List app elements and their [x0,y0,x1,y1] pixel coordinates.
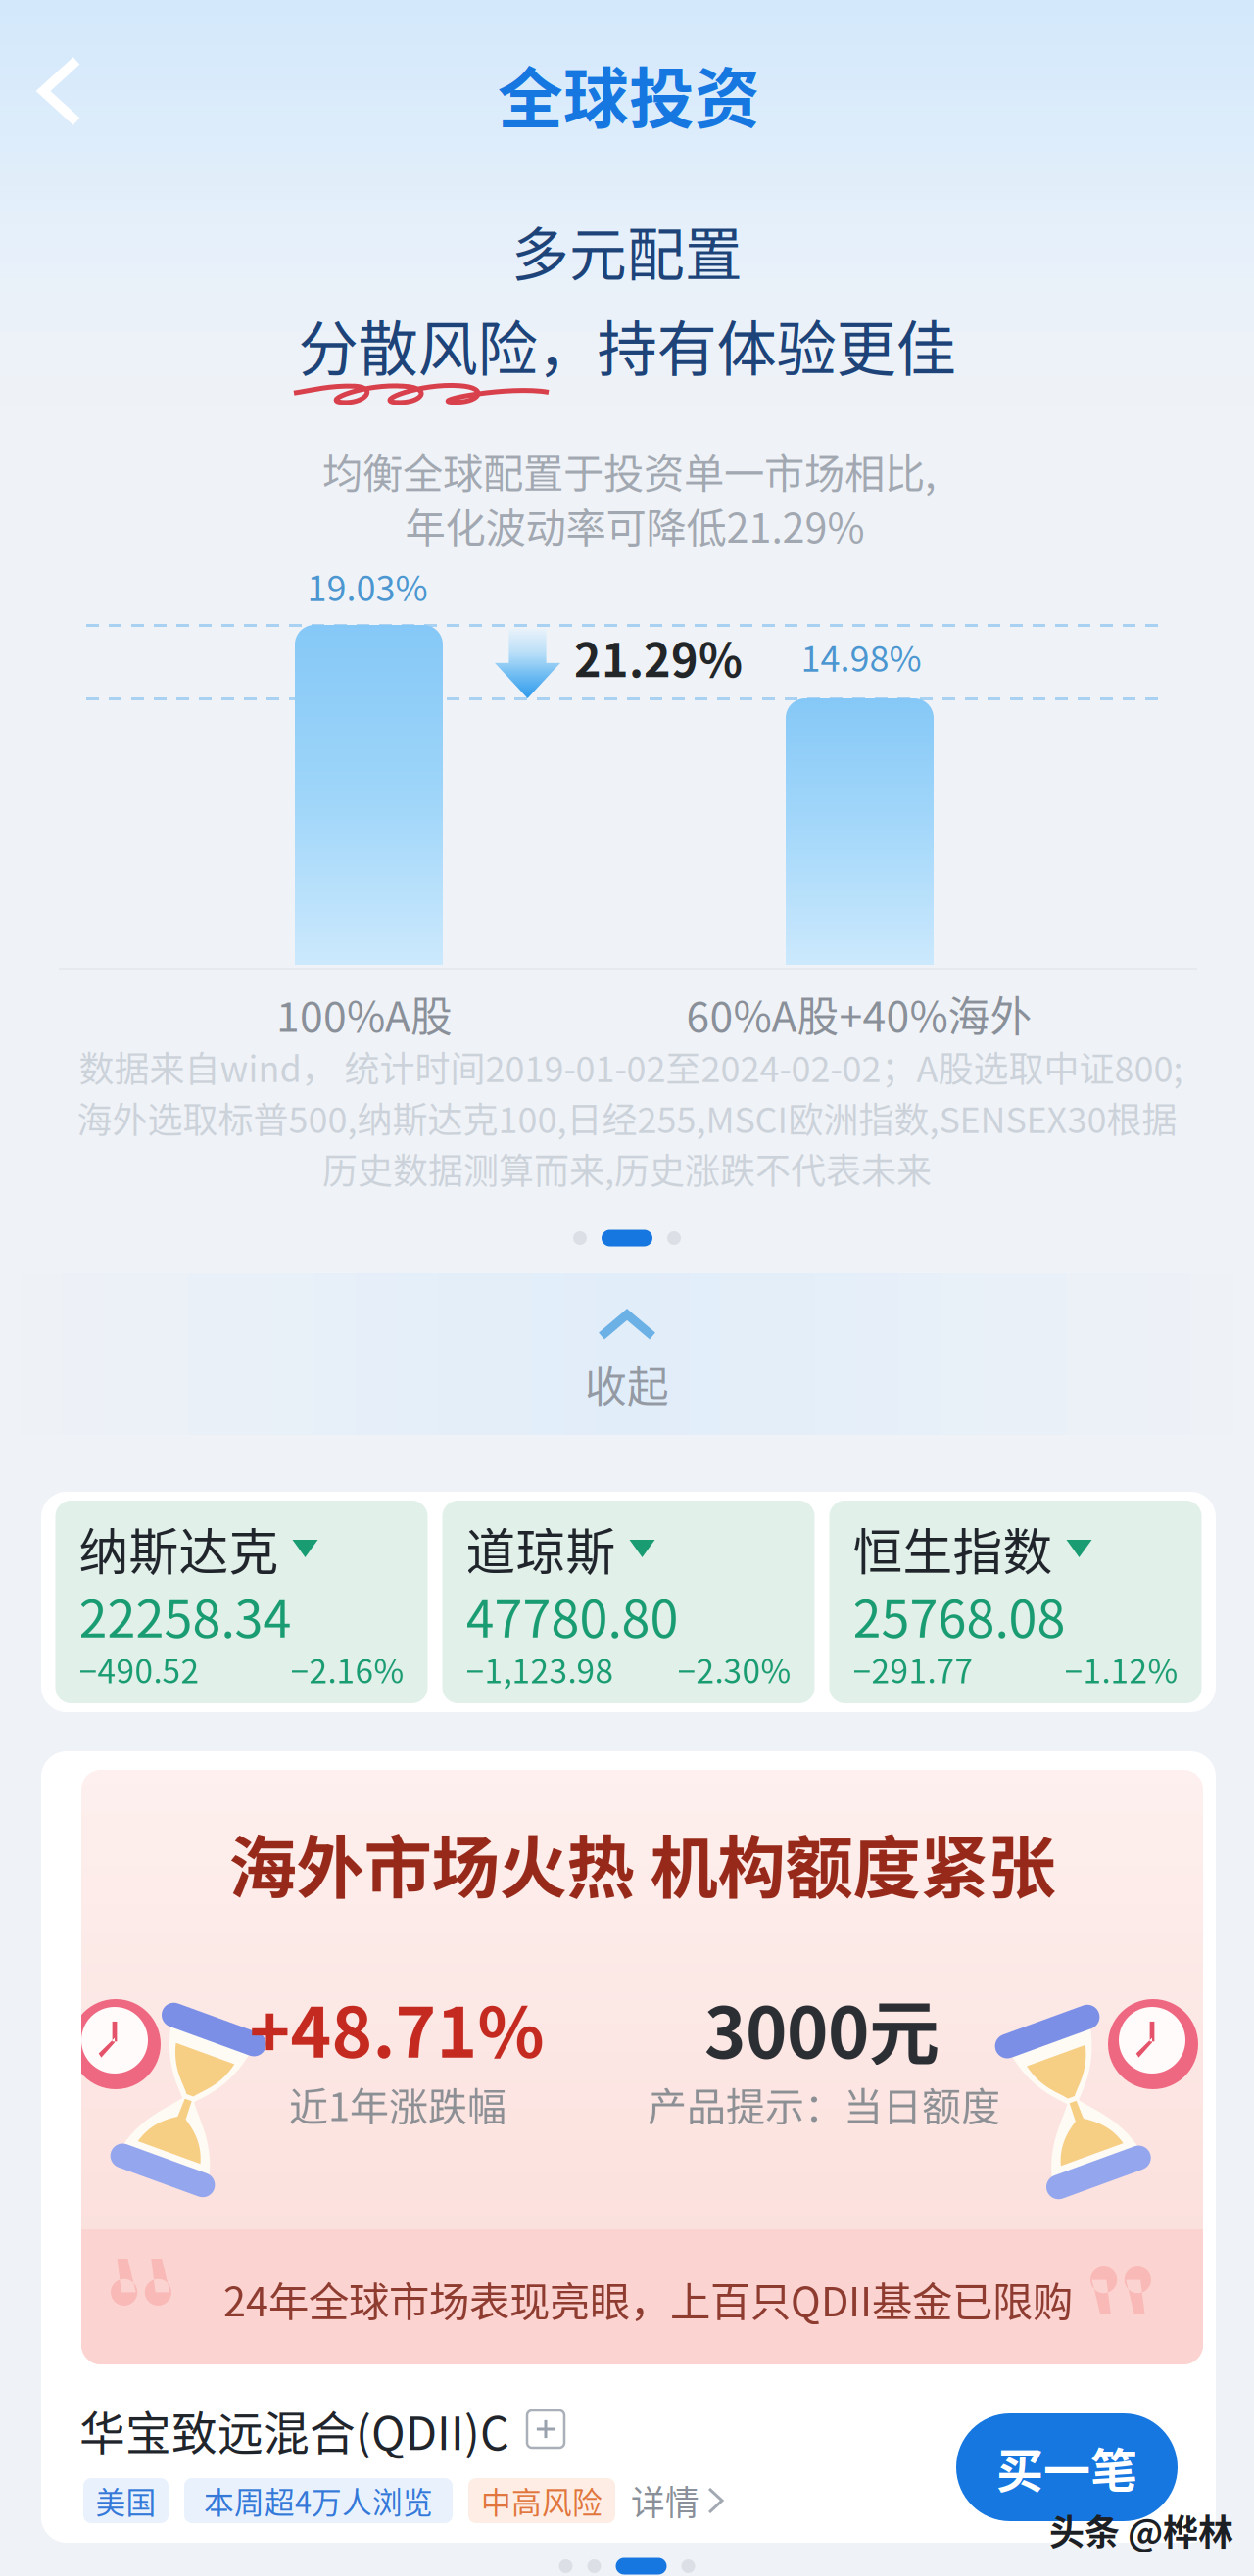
staticText: 22258.34 [79,1578,291,1652]
staticText: 14.98% [801,631,921,682]
button[interactable]: 加入自选 [527,2410,566,2450]
staticText: 收起 [585,1354,669,1414]
staticText: 本周超4万人浏览 [204,2479,433,2522]
button[interactable]: 恒生指数 [829,1501,1202,1703]
staticText: 历史数据测算而来,历史涨跌不代表未来 [322,1143,932,1194]
staticText: 数据来自wind， 统计时间2019-01-02至2024-02-02；A股选取… [79,1041,1183,1092]
staticText: 19.03% [307,560,428,611]
staticText: −291.77 [853,1645,973,1693]
staticText: −2.16% [290,1645,404,1693]
staticText: −1,123.98 [466,1645,614,1693]
staticText: 买一笔 [996,2433,1137,2501]
staticText: 60%A股+40%海外 [686,983,1032,1044]
staticText: 均衡全球配置于投资单一市场相比, [322,441,936,500]
button[interactable]: 道琼斯 [442,1501,815,1703]
staticText: 海外市场火热 机构额度紧张 [229,1814,1056,1912]
staticText: 华宝致远混合(QDII)C [79,2397,509,2463]
staticText: 3000元 [704,1976,940,2079]
staticText: 25768.08 [853,1578,1065,1652]
staticText: 产品提示：当日额度 [648,2075,1000,2132]
staticText: 海外选取标普500,纳斯达克100,日经255,MSCI欧洲指数,SENSEX3… [77,1092,1177,1143]
staticText: 24年全球市场表现亮眼，上百只QDII基金已限购 [223,2270,1073,2328]
staticText: 详情 [631,2476,699,2525]
staticText: 多元配置 [511,209,743,292]
staticText: 年化波动率可降低21.29% [405,496,865,554]
staticText: 47780.80 [466,1578,678,1652]
button[interactable]: 买一笔 [956,2413,1178,2521]
staticText: −490.52 [79,1645,199,1693]
staticText: 恒生指数 [853,1513,1053,1584]
staticText: 全球投资 [498,47,760,141]
button[interactable]: 详情 [631,2478,722,2523]
staticText: 中高风险 [481,2479,603,2522]
button[interactable]: 纳斯达克 [55,1501,428,1703]
staticText: 近1年涨跌幅 [289,2075,506,2132]
staticText: 道琼斯 [466,1513,616,1584]
staticText: 100%A股 [276,983,453,1044]
button[interactable]: 返回 [0,0,116,161]
button[interactable]: 收起 [0,1273,1254,1435]
staticText: +48.71% [249,1977,544,2078]
staticText: 21.29% [574,624,743,690]
staticText: 纳斯达克 [79,1513,279,1584]
staticText: 头条 @桦林 [1049,2504,1233,2555]
staticText: −1.12% [1064,1645,1178,1693]
staticText: 美国 [96,2479,156,2522]
staticText: 分散风险，持有体验更佳 [298,301,956,388]
staticText: −2.30% [677,1645,791,1693]
